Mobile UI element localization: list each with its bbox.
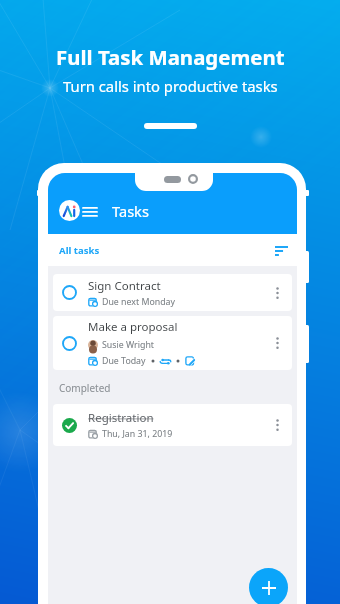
staticText: Due next Monday [102, 296, 176, 308]
button[interactable]: Menu [81, 202, 99, 220]
button[interactable]: App logo [59, 200, 80, 221]
button[interactable]: More options [266, 330, 288, 356]
staticText: Turn calls into productive tasks [63, 76, 278, 96]
staticText: Susie Wright [102, 339, 155, 351]
button[interactable]: Add task [249, 568, 288, 604]
staticText: Due Today [102, 355, 146, 367]
button[interactable]: Sort [270, 239, 292, 261]
button[interactable]: More options [266, 412, 288, 438]
staticText: Thu, Jan 31, 2019 [102, 428, 173, 440]
staticText: Full Task Management [56, 43, 285, 71]
button[interactable]: Registration [53, 404, 292, 446]
staticText: Registration [88, 410, 154, 426]
staticText: All tasks [59, 244, 100, 257]
button[interactable]: Sign Contract [53, 274, 292, 311]
staticText: Sign Contract [88, 278, 161, 294]
button[interactable]: More options [266, 280, 288, 306]
staticText: Make a proposal [88, 319, 178, 335]
button[interactable]: Make a proposal [53, 316, 292, 370]
staticText: Completed [59, 381, 111, 395]
staticText: Tasks [112, 201, 149, 221]
